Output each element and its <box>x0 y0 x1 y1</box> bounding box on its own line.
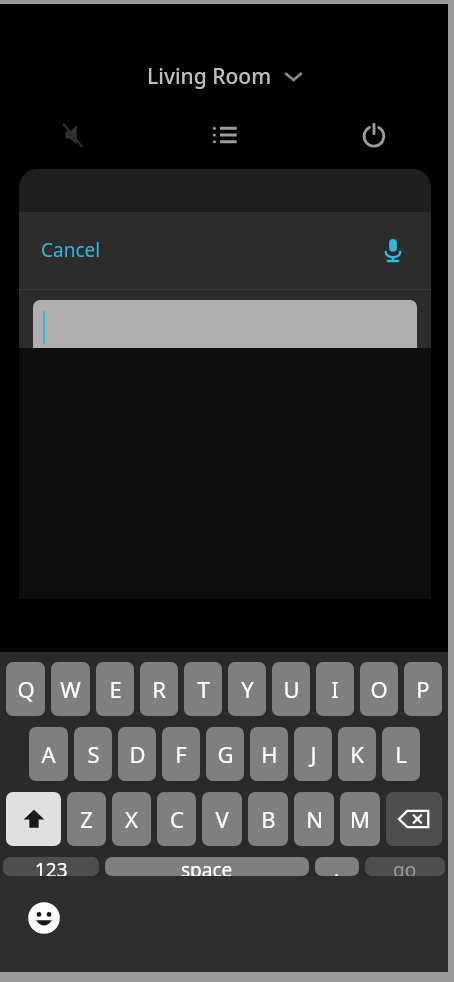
staticText: I <box>331 674 339 704</box>
staticText: P <box>416 674 430 704</box>
button[interactable]: B <box>248 792 288 846</box>
button[interactable]: J <box>294 727 332 781</box>
staticText: Living Room <box>147 62 272 91</box>
button[interactable]: Q <box>6 662 45 716</box>
button[interactable]: D <box>118 727 156 781</box>
staticText: Y <box>241 674 254 704</box>
staticText: M <box>350 804 370 834</box>
button[interactable]: R <box>140 662 178 716</box>
button[interactable]: Queue <box>199 109 251 161</box>
staticText: . <box>334 857 340 876</box>
staticText: K <box>350 739 364 769</box>
button[interactable]: I <box>316 662 354 716</box>
button[interactable]: Power <box>348 109 400 161</box>
staticText: H <box>261 739 278 769</box>
button[interactable]: Shift <box>6 792 61 846</box>
button[interactable]: U <box>272 662 310 716</box>
button[interactable]: N <box>294 792 334 846</box>
button[interactable]: . <box>315 857 359 876</box>
button[interactable] <box>33 300 417 355</box>
staticText: R <box>152 674 166 704</box>
button[interactable]: L <box>382 727 420 781</box>
staticText: D <box>129 739 146 769</box>
button[interactable]: A <box>29 727 68 781</box>
button[interactable]: Living Room <box>139 58 310 95</box>
staticText: Z <box>80 804 93 834</box>
staticText: X <box>125 804 138 834</box>
staticText: L <box>395 739 407 769</box>
button[interactable]: W <box>51 662 90 716</box>
button[interactable]: O <box>360 662 398 716</box>
button[interactable]: Mute <box>49 109 101 161</box>
staticText: Cancel <box>41 237 101 263</box>
staticText: S <box>87 739 100 769</box>
button[interactable]: 123 <box>3 857 99 876</box>
button[interactable]: Z <box>67 792 106 846</box>
staticText: Q <box>17 674 35 704</box>
staticText: O <box>370 674 388 704</box>
staticText: C <box>170 804 184 834</box>
button[interactable]: K <box>338 727 376 781</box>
staticText: B <box>261 804 276 834</box>
button[interactable]: V <box>202 792 242 846</box>
button[interactable]: C <box>157 792 196 846</box>
staticText: J <box>310 739 317 769</box>
staticText: space <box>181 857 233 876</box>
button[interactable]: Cancel <box>19 231 123 269</box>
staticText: A <box>41 739 56 769</box>
staticText: U <box>283 674 300 704</box>
button[interactable]: go <box>365 857 445 876</box>
button[interactable]: T <box>184 662 222 716</box>
button[interactable]: X <box>112 792 151 846</box>
staticText: F <box>175 739 187 769</box>
button[interactable]: Voice search <box>369 226 417 274</box>
button[interactable]: space <box>105 857 309 876</box>
staticText: 123 <box>35 857 68 876</box>
staticText: go <box>393 857 417 876</box>
button[interactable]: Backspace <box>386 792 442 846</box>
button[interactable]: F <box>162 727 200 781</box>
button[interactable]: P <box>404 662 442 716</box>
button[interactable]: E <box>96 662 134 716</box>
button[interactable]: Emoji <box>22 896 66 940</box>
button[interactable]: H <box>250 727 288 781</box>
staticText: E <box>109 674 122 704</box>
button[interactable]: G <box>206 727 244 781</box>
staticText: T <box>197 674 210 704</box>
button[interactable]: M <box>340 792 380 846</box>
staticText: G <box>217 739 234 769</box>
staticText: W <box>60 674 81 704</box>
button[interactable]: Y <box>228 662 266 716</box>
button[interactable]: S <box>74 727 112 781</box>
staticText: N <box>306 804 323 834</box>
staticText: V <box>215 804 229 834</box>
